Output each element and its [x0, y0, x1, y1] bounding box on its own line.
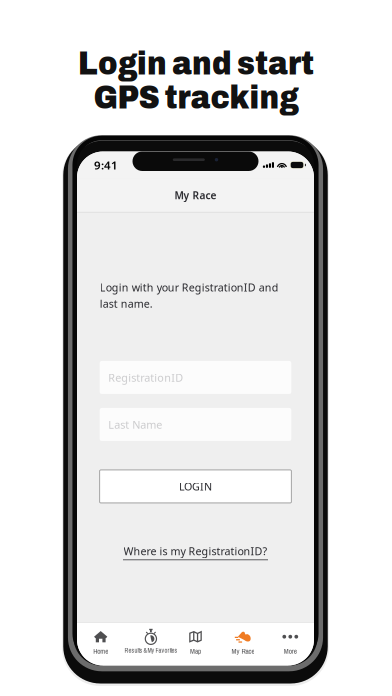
staticText: RegistrationID — [108, 370, 183, 385]
button[interactable]: Results & My Favorites — [124, 623, 172, 665]
staticText: GPS tracking — [93, 79, 298, 115]
button[interactable]: Map — [172, 623, 219, 665]
staticText: Results & My Favorites — [124, 646, 177, 655]
staticText: Login and start — [78, 45, 314, 82]
staticText: Where is my RegistrationID? — [123, 544, 267, 558]
staticText: More — [284, 646, 297, 656]
staticText: My Race — [231, 646, 254, 656]
staticText: 9:41 — [94, 157, 118, 173]
staticText: Map — [190, 646, 201, 656]
staticText: Last Name — [108, 417, 162, 432]
button[interactable]: Home — [77, 623, 124, 665]
button[interactable]: More — [267, 623, 314, 665]
button[interactable]: LOGIN — [100, 470, 291, 503]
staticText: My Race — [174, 188, 216, 202]
staticText: Login with your RegistrationID and last … — [100, 280, 279, 311]
button[interactable]: Where is my RegistrationID? — [120, 544, 270, 560]
staticText: Home — [93, 646, 108, 656]
button[interactable]: My Race — [219, 623, 267, 665]
staticText: LOGIN — [179, 479, 212, 494]
